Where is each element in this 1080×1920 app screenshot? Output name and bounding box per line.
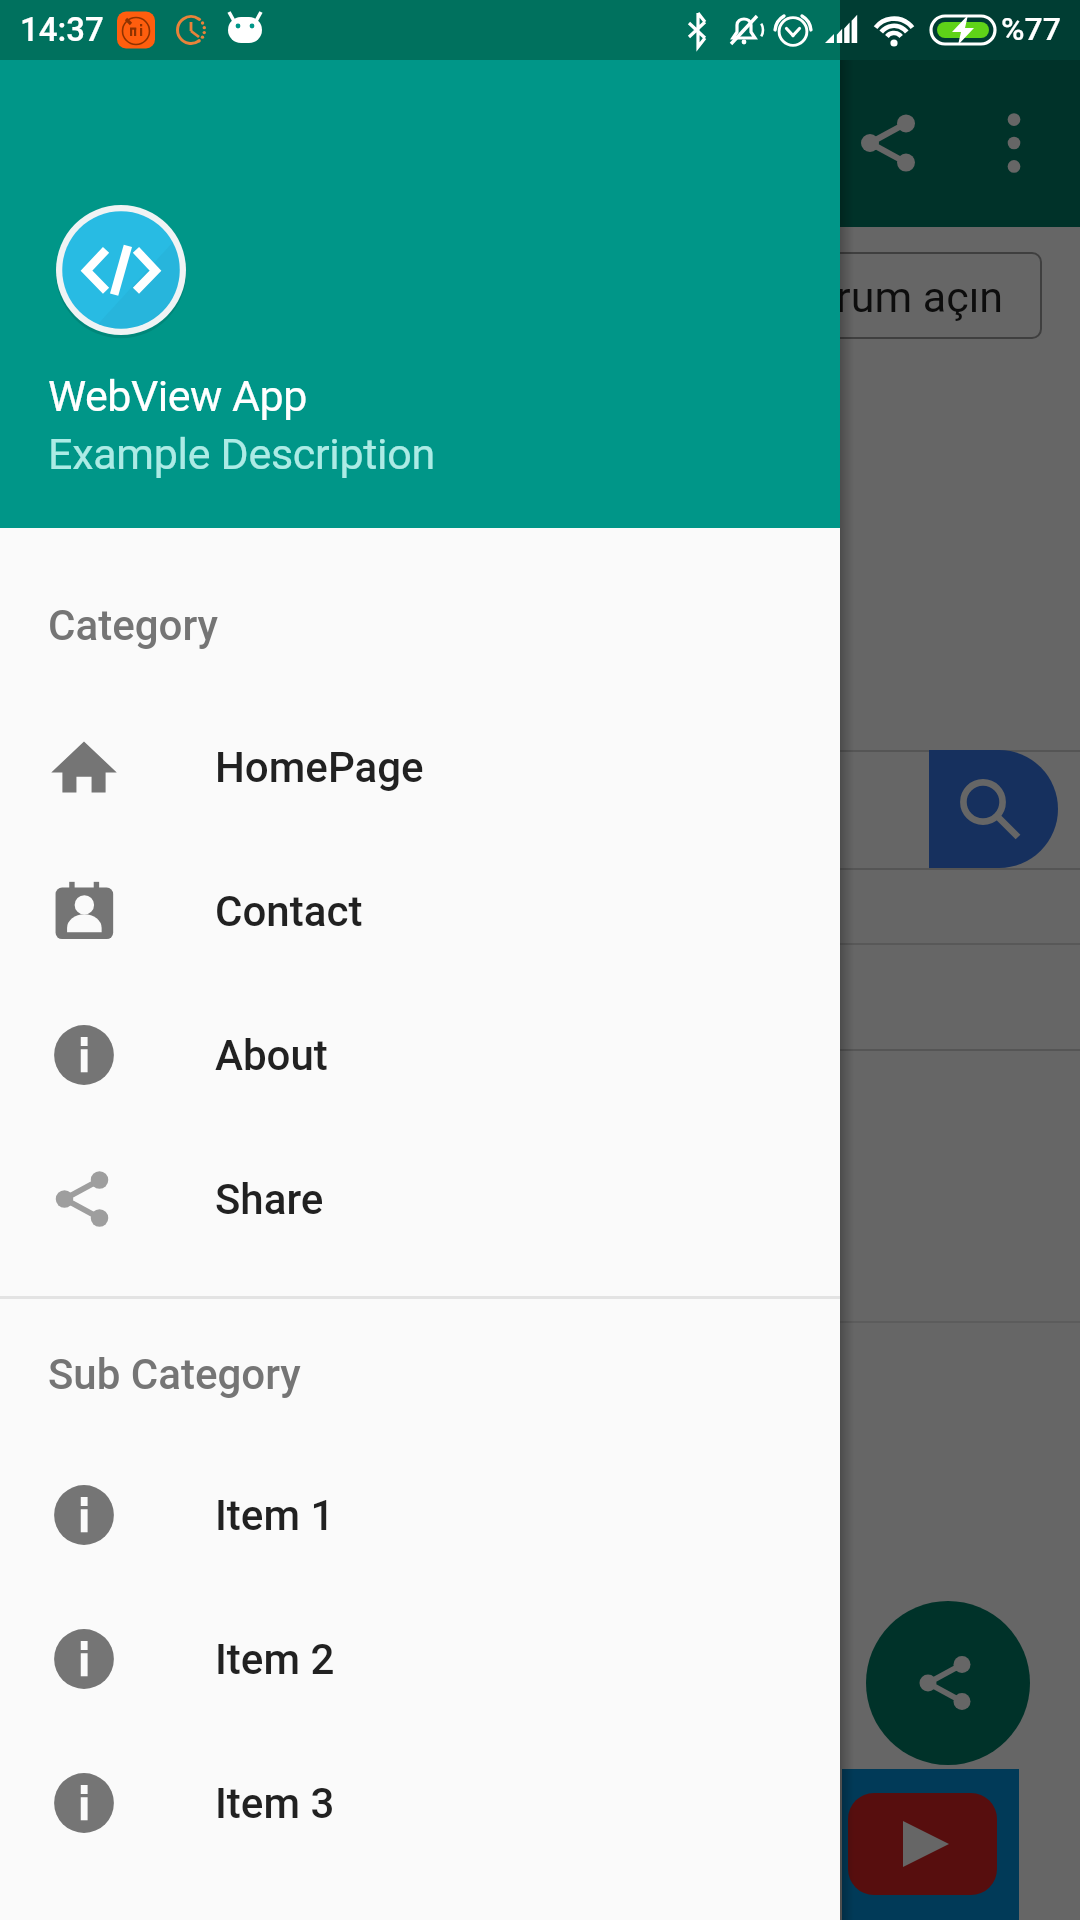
- button[interactable]: Yeni sekmede durum açın: [38, 252, 1042, 339]
- button[interactable]: Contact: [0, 839, 840, 983]
- staticText: 14:37: [20, 10, 104, 49]
- staticText: Example Description: [48, 429, 435, 479]
- staticText: %77: [1001, 10, 1061, 48]
- button[interactable]: Item 3: [0, 1731, 840, 1875]
- button[interactable]: About: [0, 983, 840, 1127]
- staticText: Share: [215, 1175, 324, 1224]
- button[interactable]: Share: [0, 1127, 840, 1271]
- button[interactable]: Item 2: [0, 1587, 840, 1731]
- staticText: About: [215, 1031, 328, 1080]
- staticText: Item 3: [215, 1779, 335, 1828]
- staticText: Item 2: [215, 1635, 335, 1684]
- button[interactable]: Item 1: [0, 1443, 840, 1587]
- button[interactable]: Share: [866, 1601, 1030, 1765]
- staticText: HomePage: [215, 743, 424, 792]
- staticText: WebView App: [48, 371, 307, 421]
- button[interactable]: HomePage: [0, 695, 840, 839]
- button[interactable]: Search: [929, 750, 1058, 868]
- staticText: Yeni sekmede durum açın: [511, 272, 1004, 322]
- staticText: Item 1: [215, 1491, 335, 1540]
- button[interactable]: Share: [824, 79, 952, 207]
- staticText: Contact: [215, 887, 363, 936]
- staticText: Sub Category: [48, 1350, 301, 1399]
- button[interactable]: More options: [950, 79, 1078, 207]
- staticText: Category: [48, 601, 218, 650]
